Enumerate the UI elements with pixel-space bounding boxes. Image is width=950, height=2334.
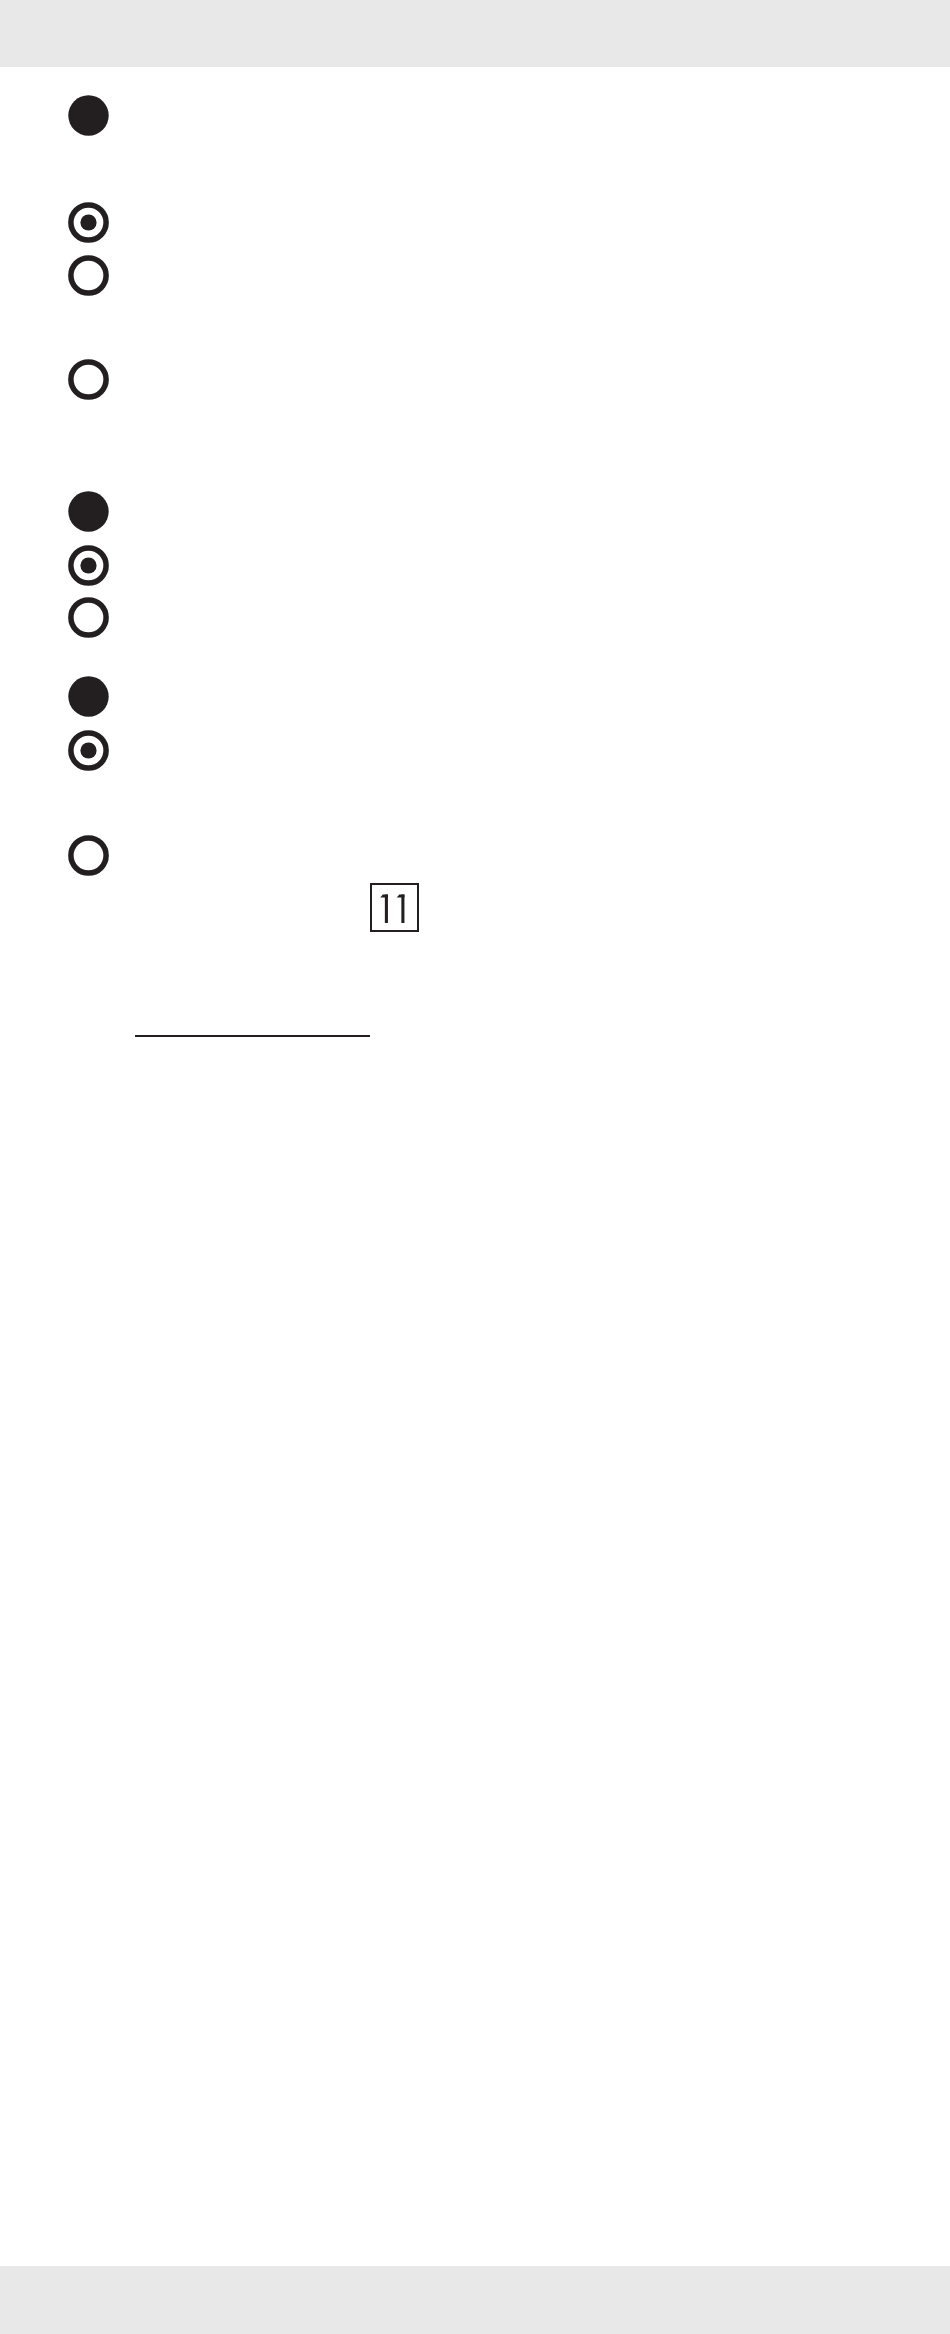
- button[interactable]: Choice C: [0, 353, 950, 406]
- button[interactable]: Section three: [0, 670, 950, 723]
- button[interactable]: Choice F, selected: [0, 724, 950, 777]
- button[interactable]: Choice B: [0, 249, 950, 302]
- button[interactable]: Section one: [0, 89, 950, 142]
- button[interactable]: Choice D, selected: [0, 539, 950, 592]
- button[interactable]: Section two: [0, 485, 950, 538]
- button[interactable]: Choice G: [0, 829, 950, 882]
- button[interactable]: Choice A, selected: [0, 196, 950, 249]
- button[interactable]: Page 11: [370, 883, 419, 932]
- button[interactable]: Choice E: [0, 591, 950, 644]
